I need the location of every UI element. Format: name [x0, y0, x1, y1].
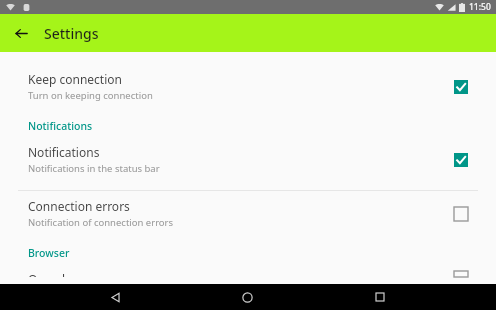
button[interactable]: Unchecked — [450, 271, 472, 277]
staticText: Open browser — [28, 271, 109, 277]
staticText: Browser — [28, 246, 70, 260]
button[interactable]: Connection errors — [0, 191, 496, 236]
staticText: Turn on keeping connection — [28, 89, 153, 102]
button[interactable]: Unchecked — [450, 203, 472, 225]
button[interactable]: Back — [98, 284, 132, 310]
button[interactable]: Notifications — [0, 137, 496, 182]
button[interactable]: Checked — [450, 76, 472, 98]
staticText: Notifications in the status bar — [28, 162, 160, 175]
button[interactable]: Open browser — [0, 264, 496, 284]
staticText: Notifications — [28, 144, 100, 160]
button[interactable]: Checked — [450, 149, 472, 171]
staticText: Connection errors — [28, 198, 130, 214]
staticText: Settings — [44, 24, 99, 43]
button[interactable]: Recents — [363, 284, 397, 310]
staticText: 11:50 — [469, 1, 491, 13]
staticText: Notification of connection errors — [28, 216, 174, 229]
button[interactable]: Keep connection — [0, 64, 496, 109]
staticText: Keep connection — [28, 71, 122, 87]
staticText: Notifications — [28, 119, 93, 133]
button[interactable]: Back — [8, 20, 34, 46]
button[interactable]: Home — [230, 284, 264, 310]
